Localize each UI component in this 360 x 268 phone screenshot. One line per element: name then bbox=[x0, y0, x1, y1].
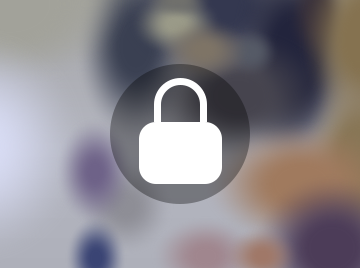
button[interactable]: Content hidden bbox=[0, 0, 360, 268]
